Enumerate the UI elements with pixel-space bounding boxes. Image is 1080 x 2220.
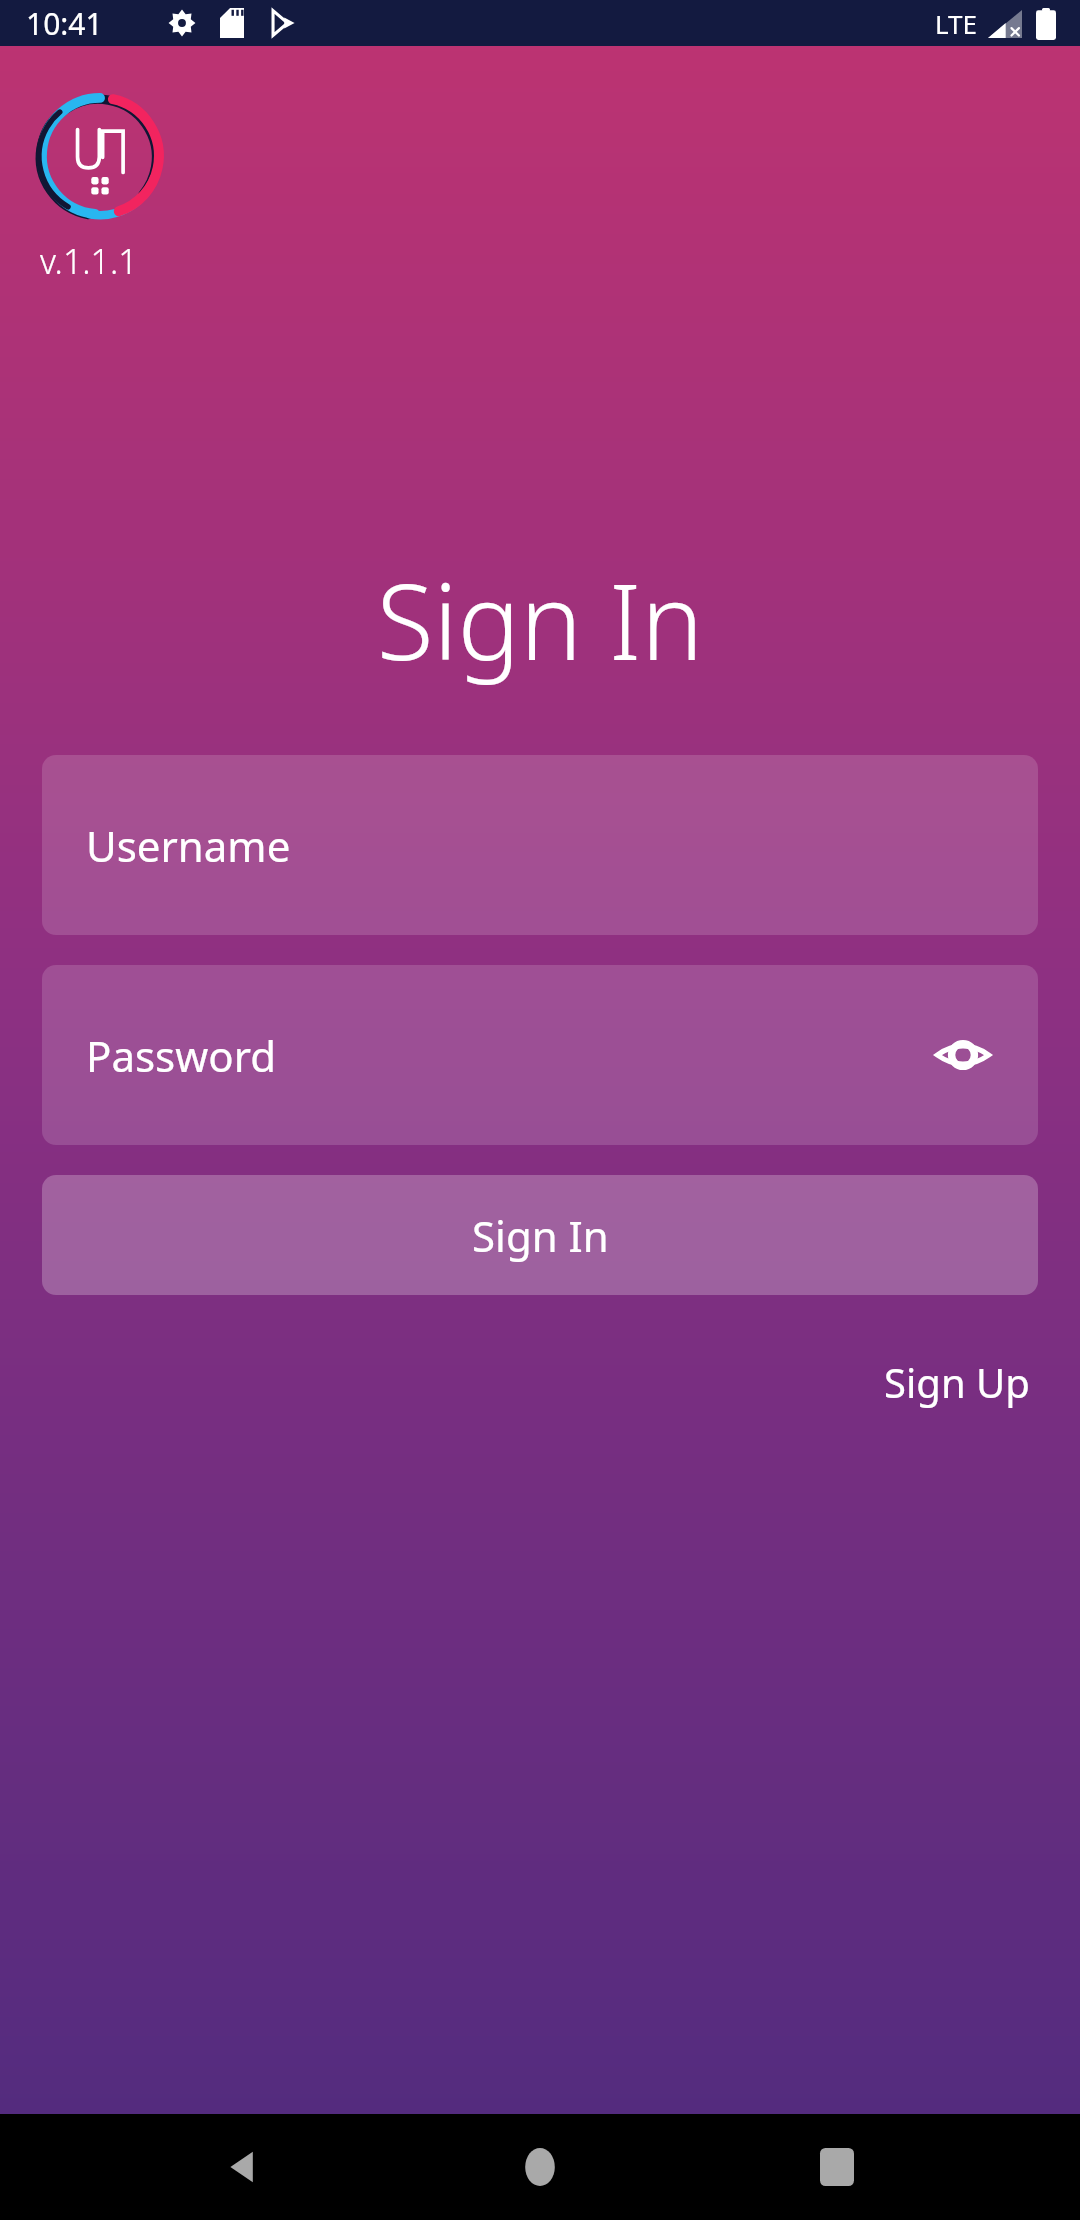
button[interactable]: Home xyxy=(487,2114,593,2220)
button[interactable]: Back xyxy=(191,2114,297,2220)
button[interactable]: Recent apps xyxy=(784,2114,890,2220)
other: App logo xyxy=(34,90,166,222)
staticText: 10:41 xyxy=(26,3,103,44)
staticText: v.1.1.1 xyxy=(40,238,138,284)
button[interactable]: Show password xyxy=(930,1022,996,1088)
staticText: Sign In xyxy=(42,549,1038,691)
staticText: Password xyxy=(86,1027,276,1084)
staticText: Username xyxy=(86,817,291,874)
staticText: Sign In xyxy=(472,1207,609,1264)
button[interactable]: Sign Up xyxy=(876,1347,1038,1417)
button[interactable]: Sign In xyxy=(42,1175,1038,1295)
staticText: Sign Up xyxy=(884,1355,1030,1409)
staticText: LTE xyxy=(935,6,978,41)
button[interactable]: Username xyxy=(42,755,1038,935)
button[interactable]: Password xyxy=(42,965,1038,1145)
